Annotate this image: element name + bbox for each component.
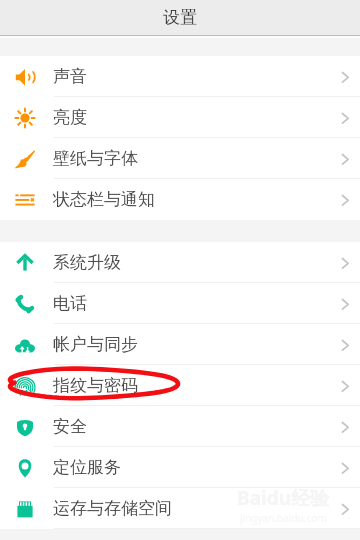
button[interactable]: 设置 [0,0,360,35]
staticText: 设置 [163,7,197,28]
button[interactable]: Sound [0,56,360,97]
other: Memory and storage [15,499,35,519]
button[interactable]: Phone [0,283,360,324]
staticText: 电话 [53,293,87,314]
staticText: Baidu经验 [237,485,330,511]
staticText: 运存与存储空间 [53,498,172,519]
staticText: 壁纸与字体 [53,148,138,169]
staticText: 帐户与同步 [53,334,138,355]
button[interactable]: Status bar and notifications [0,179,360,220]
staticText: 安全 [53,416,87,437]
other: Sound [15,67,35,87]
button[interactable]: Brightness [0,97,360,138]
staticText: 声音 [53,66,87,87]
button[interactable]: Wallpaper and font [0,138,360,179]
other: Accounts and sync [15,335,35,355]
other: Fingerprint and password [15,376,35,396]
other: Status bar and notifications [15,190,35,210]
staticText: 定位服务 [53,457,121,478]
other: Location service [15,458,35,478]
button[interactable]: System upgrade [0,242,360,283]
staticText: 系统升级 [53,252,121,273]
other: Security [15,417,35,437]
other: Brightness [15,108,35,128]
button[interactable]: Fingerprint and password [0,365,360,406]
staticText: jingyan.baidu.com [240,511,327,525]
other: Phone [15,294,35,314]
button[interactable]: Memory and storage [0,488,360,529]
staticText: 状态栏与通知 [53,189,155,210]
staticText: 指纹与密码 [53,375,138,396]
other: System upgrade [15,253,35,273]
button[interactable]: Accounts and sync [0,324,360,365]
staticText: 亮度 [53,107,87,128]
button[interactable]: Security [0,406,360,447]
button[interactable]: Location service [0,447,360,488]
other: Wallpaper and font [15,149,35,169]
